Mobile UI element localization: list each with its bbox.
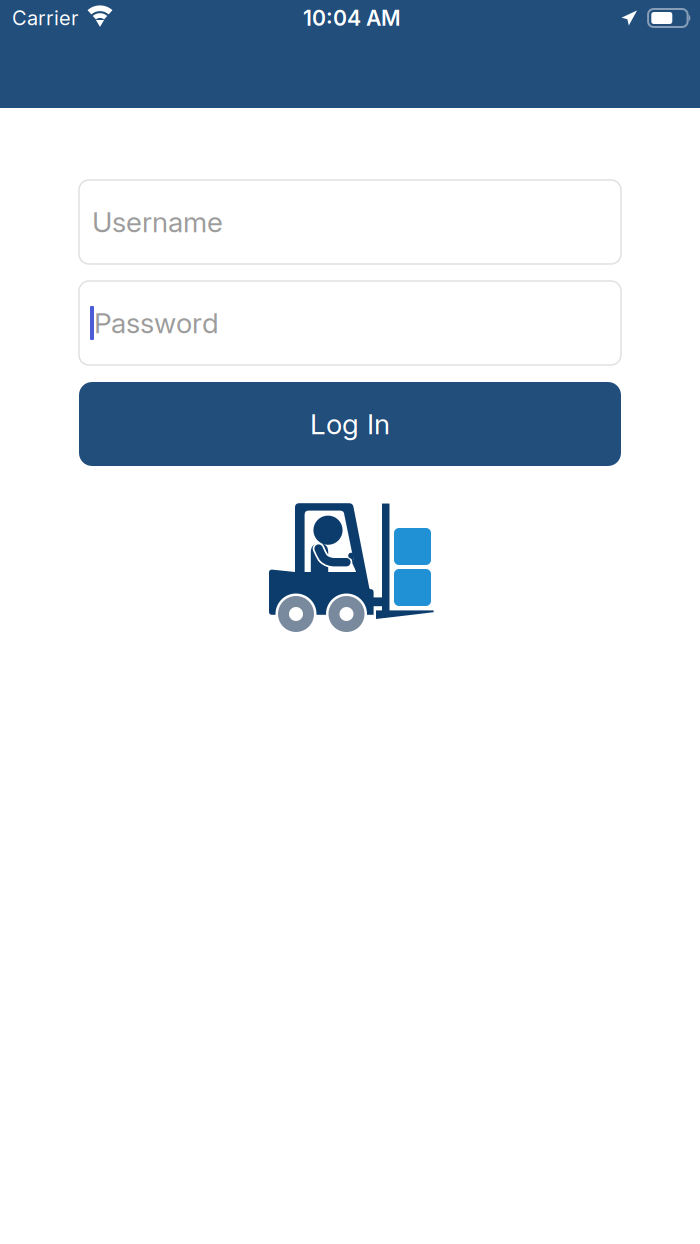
- staticText: 10:04 AM: [303, 5, 401, 31]
- button[interactable]: Password: [79, 281, 621, 365]
- staticText: Username: [92, 205, 223, 239]
- staticText: Password: [94, 306, 219, 340]
- staticText: Log In: [310, 407, 390, 441]
- button[interactable]: Username: [79, 180, 621, 264]
- staticText: Carrier: [12, 6, 78, 30]
- button[interactable]: Log In: [79, 382, 621, 466]
